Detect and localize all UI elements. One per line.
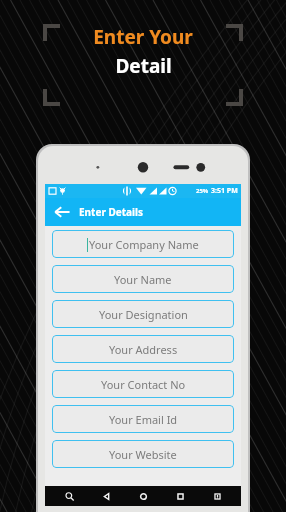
staticText: Your Company Name [89, 237, 199, 252]
button[interactable]: Back [93, 486, 119, 506]
staticText: Your Email Id [109, 412, 178, 427]
button[interactable]: Menu [204, 486, 230, 506]
staticText: Your Designation [99, 307, 188, 322]
button[interactable]: Your Company Name [52, 230, 234, 258]
button[interactable]: Recents [167, 486, 193, 506]
staticText: Detail [115, 53, 172, 79]
button[interactable]: Your Designation [52, 300, 234, 328]
button[interactable]: Back [49, 199, 75, 225]
staticText: Enter Your [93, 24, 193, 50]
staticText: Your Contact No [101, 377, 186, 392]
button[interactable]: Search [56, 486, 82, 506]
button[interactable]: Your Contact No [52, 370, 234, 398]
button[interactable]: Your Email Id [52, 405, 234, 433]
staticText: 3:51 PM [211, 186, 238, 196]
button[interactable]: Home [130, 486, 156, 506]
staticText: Your Name [114, 272, 172, 287]
button[interactable]: Your Website [52, 440, 234, 468]
staticText: Your Website [109, 447, 177, 462]
staticText: 25% [196, 187, 209, 195]
staticText: Enter Details [79, 205, 144, 219]
button[interactable]: Your Name [52, 265, 234, 293]
staticText: Your Address [109, 342, 178, 357]
button[interactable]: Your Address [52, 335, 234, 363]
